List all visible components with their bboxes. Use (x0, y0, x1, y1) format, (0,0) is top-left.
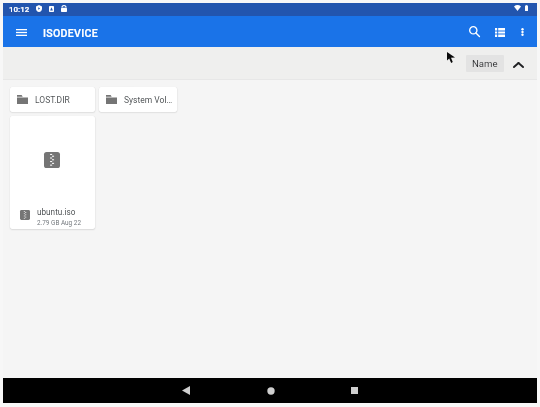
button[interactable]: More options (509, 19, 535, 45)
button[interactable]: Home (258, 378, 283, 403)
staticText: LOST.DIR (35, 95, 70, 105)
button[interactable]: Back (173, 378, 198, 403)
staticText: Name (472, 58, 498, 69)
staticText: ubuntu.iso (37, 207, 76, 217)
button[interactable]: Open navigation drawer (5, 17, 38, 48)
staticText: 10:12 (9, 5, 30, 14)
staticText: System Vol… (124, 95, 173, 105)
button[interactable]: ubuntu.iso (10, 116, 95, 229)
staticText: 2.79 GB Aug 22 (37, 219, 81, 227)
button[interactable]: LOST.DIR (10, 87, 95, 112)
button[interactable]: Search (461, 18, 487, 44)
button[interactable]: Change view (487, 19, 513, 45)
button[interactable]: Name (466, 55, 504, 72)
staticText: ISODEVICE (43, 27, 99, 39)
button[interactable]: System Vol… (99, 87, 177, 112)
button[interactable]: Sort ascending (507, 54, 529, 76)
button[interactable]: Recent apps (342, 378, 367, 403)
